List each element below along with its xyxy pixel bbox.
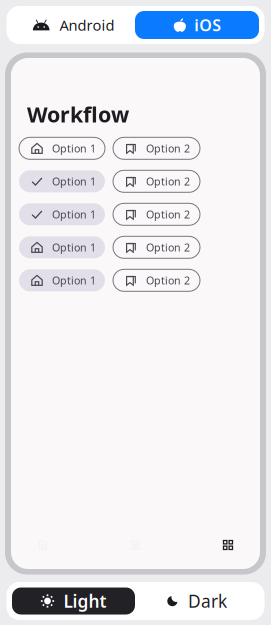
button[interactable]: Option 1 xyxy=(19,269,105,291)
button[interactable]: Option 2 xyxy=(113,236,200,258)
button[interactable]: Dark xyxy=(135,587,259,614)
staticText: iOS xyxy=(194,14,221,36)
staticText: Dark xyxy=(188,589,227,612)
button[interactable]: Light xyxy=(12,587,135,614)
button[interactable]: iOS xyxy=(135,11,259,39)
staticText: Option 1 xyxy=(52,207,96,221)
staticText: Option 1 xyxy=(52,240,96,254)
button[interactable]: Scan QR code xyxy=(211,533,245,557)
button[interactable]: Option 2 xyxy=(113,170,200,192)
button[interactable]: Option 1 xyxy=(19,137,105,159)
button[interactable]: Option 2 xyxy=(113,203,200,225)
staticText: Option 1 xyxy=(52,273,96,287)
staticText: Option 2 xyxy=(146,174,190,188)
button[interactable]: Option 1 xyxy=(19,170,105,192)
button[interactable]: Option 1 xyxy=(19,203,105,225)
staticText: Light xyxy=(63,589,106,612)
staticText: Option 1 xyxy=(52,174,96,188)
staticText: Option 2 xyxy=(146,273,190,287)
button[interactable]: Option 2 xyxy=(113,137,200,159)
staticText: Android xyxy=(59,15,114,35)
button[interactable]: Option 2 xyxy=(113,269,200,291)
button[interactable]: Android xyxy=(12,11,135,39)
staticText: Option 2 xyxy=(146,141,190,155)
staticText: Option 2 xyxy=(146,207,190,221)
staticText: Option 2 xyxy=(146,240,190,254)
button[interactable]: Option 1 xyxy=(19,236,105,258)
staticText: Workflow xyxy=(27,100,129,128)
staticText: Option 1 xyxy=(52,141,96,155)
